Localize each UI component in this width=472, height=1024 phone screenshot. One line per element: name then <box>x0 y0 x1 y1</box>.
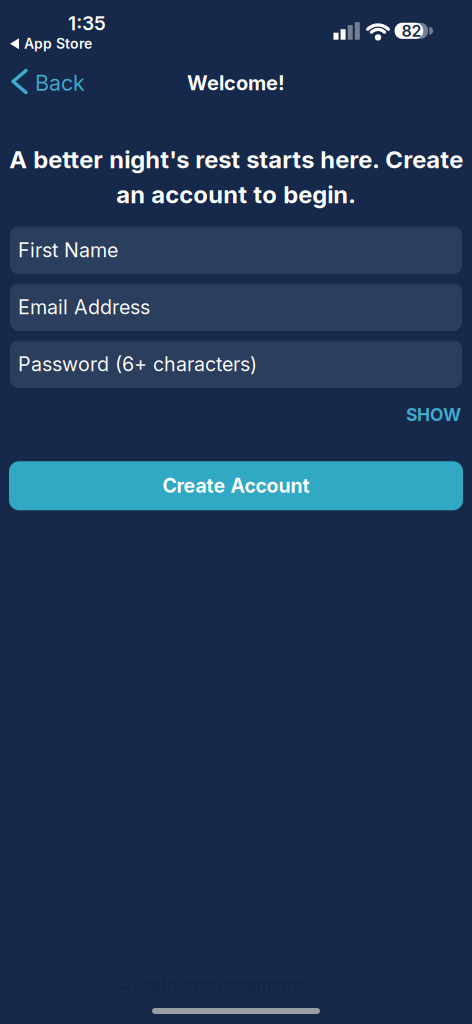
staticText: Welcome! <box>187 71 285 95</box>
button[interactable]: Create Account <box>9 461 463 510</box>
staticText: 1:35 <box>68 12 106 35</box>
staticText: Password (6+ characters) <box>18 352 257 376</box>
staticText: App Store <box>24 35 92 52</box>
staticText: 82 <box>401 21 421 41</box>
staticText: SHOW <box>406 404 461 425</box>
button[interactable]: Email Address <box>10 283 462 331</box>
staticText: First Name <box>18 238 118 262</box>
staticText: A better night's rest starts here. Creat… <box>9 145 463 209</box>
button[interactable]: First Name <box>10 226 462 274</box>
button[interactable]: Password (6+ characters) <box>10 340 462 388</box>
staticText: Email Address <box>18 295 150 319</box>
staticText: Back <box>35 70 85 96</box>
button[interactable]: Show password <box>406 404 461 425</box>
button[interactable]: Back <box>0 70 85 96</box>
staticText: Create Account <box>162 474 309 498</box>
